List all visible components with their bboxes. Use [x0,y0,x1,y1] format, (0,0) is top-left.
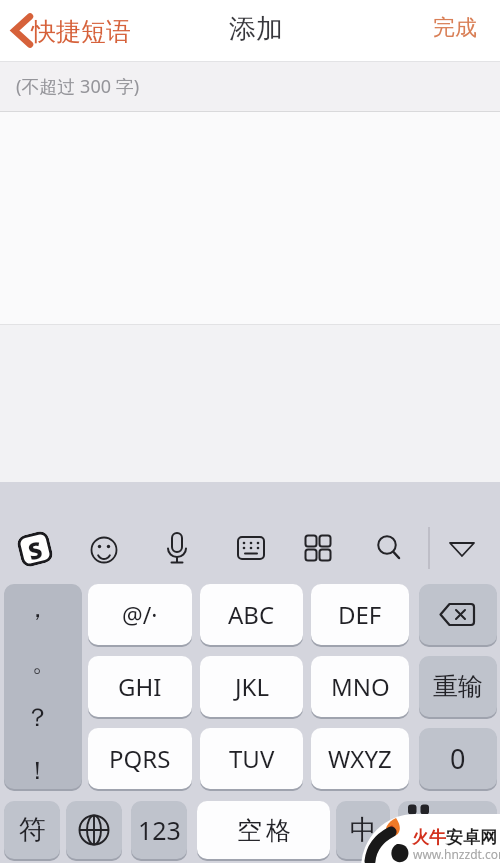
staticText: 中 [350,813,377,847]
staticText: TUV [229,742,275,775]
staticText: (不超过 300 字) [16,74,140,99]
button[interactable]: 空格 [197,801,330,859]
staticText: PQRS [109,742,171,775]
button[interactable]: PQRS [88,728,192,789]
staticText: MNO [331,670,390,703]
staticText: ABC [228,598,275,631]
staticText: www.hnzzdt.com [413,846,500,862]
button[interactable]: 符 [4,801,60,859]
button[interactable] [419,584,497,645]
button[interactable] [227,526,271,570]
staticText: ， [25,593,50,624]
button[interactable]: 快捷短语 [4,8,169,54]
staticText: DEF [338,598,382,631]
staticText: GHI [118,670,162,703]
button[interactable]: 0 [419,728,497,789]
staticText: 火牛 [412,827,446,848]
staticText: @/· [122,599,158,630]
button[interactable] [369,526,413,570]
button[interactable]: 中 [336,801,390,859]
button[interactable]: ABC [200,584,303,645]
staticText: 符 [19,813,46,847]
button[interactable] [85,526,129,570]
button[interactable]: TUV [200,728,303,789]
button[interactable] [66,801,122,859]
staticText: 123 [138,813,181,847]
button[interactable]: @/· [88,584,192,645]
button[interactable] [4,584,82,789]
staticText: S [25,533,46,566]
staticText: ？ [25,702,50,733]
staticText: 空格 [235,815,293,846]
staticText: WXYZ [328,742,392,775]
button[interactable]: MNO [311,656,409,717]
staticText: 快捷短语 [31,16,131,47]
button[interactable]: 完成 [415,5,495,51]
staticText: 重输 [433,671,483,702]
button[interactable]: DEF [311,584,409,645]
button[interactable] [398,801,497,859]
button[interactable] [156,526,200,570]
button[interactable] [440,526,484,570]
staticText: JKL [235,670,269,703]
staticText: 。 [32,647,57,678]
button[interactable]: JKL [200,656,303,717]
button[interactable]: 重输 [419,656,497,717]
staticText: 完成 [433,14,477,42]
staticText: ！ [25,755,50,786]
button[interactable] [14,526,58,570]
staticText: 0 [450,740,466,777]
staticText: 安卓网 [446,827,497,848]
button[interactable] [298,526,342,570]
button[interactable]: 123 [131,801,187,859]
staticText: 添加 [229,12,283,46]
button[interactable]: GHI [88,656,192,717]
button[interactable]: WXYZ [311,728,409,789]
